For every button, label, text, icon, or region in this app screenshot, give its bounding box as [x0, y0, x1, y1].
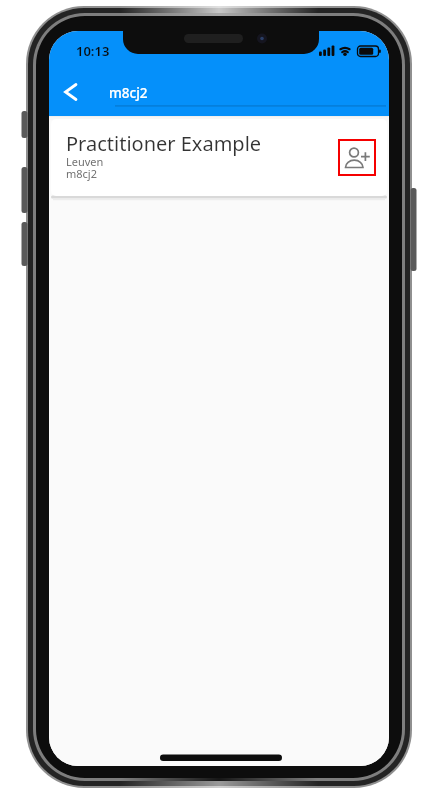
staticText: Leuven [66, 154, 104, 169]
button[interactable] [338, 139, 376, 176]
staticText: m8cj2 [66, 166, 97, 181]
staticText: Practitioner Example [66, 130, 262, 157]
button[interactable] [56, 78, 84, 106]
button[interactable]: Practitioner Example [51, 119, 387, 196]
staticText: m8cj2 [109, 84, 148, 102]
staticText: 10:13 [76, 42, 110, 60]
